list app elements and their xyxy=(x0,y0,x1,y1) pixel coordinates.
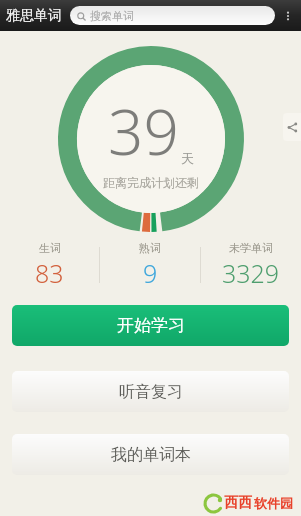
staticText: 距离完成计划还剩 xyxy=(103,175,199,190)
staticText: 生词 xyxy=(39,241,61,255)
staticText: 3329 xyxy=(222,256,280,289)
staticText: 开始学习 xyxy=(117,315,185,336)
button[interactable]: 听音复习 xyxy=(12,371,289,412)
staticText: 39 xyxy=(108,89,179,173)
staticText: 雅思单词 xyxy=(6,7,62,25)
button[interactable]: 生词 xyxy=(0,241,99,289)
staticText: 天 xyxy=(181,150,194,166)
staticText: 我的单词本 xyxy=(111,445,191,465)
button[interactable]: 未学单词 xyxy=(201,241,301,289)
staticText: 西西 xyxy=(224,494,252,512)
staticText: 未学单词 xyxy=(229,241,273,255)
button[interactable]: 熟词 xyxy=(100,241,200,289)
staticText: 软件园 xyxy=(254,495,293,511)
button[interactable]: 开始学习 xyxy=(12,305,289,346)
button[interactable]: 我的单词本 xyxy=(12,434,289,475)
staticText: 83 xyxy=(35,256,64,289)
button[interactable]: Share xyxy=(283,113,301,141)
staticText: 听音复习 xyxy=(119,382,183,402)
button[interactable]: 搜索单词 xyxy=(70,6,275,25)
staticText: 9 xyxy=(143,256,158,289)
staticText: 搜索单词 xyxy=(90,9,134,23)
staticText: 熟词 xyxy=(139,241,161,255)
button[interactable]: More options xyxy=(281,0,295,31)
